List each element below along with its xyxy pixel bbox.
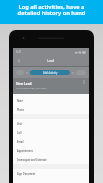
staticText: Add Activity [43,71,58,75]
staticText: Call [17,131,22,134]
button[interactable]: Call [13,128,89,137]
button[interactable]: Edit [82,80,86,84]
staticText: Investigate and Estimate [17,158,47,161]
button[interactable]: Back [15,57,23,65]
staticText: Sign Document [17,172,36,175]
staticText: Visit [17,122,23,125]
button[interactable]: Note [13,96,89,105]
staticText: 9:41 [16,50,22,54]
button[interactable]: Sign Document [13,169,89,178]
staticText: Appointment [17,149,33,152]
staticText: Note [17,99,23,102]
staticText: Log all activities, have a detailed hist… [0,3,103,17]
staticText: 1234 Sample Street, City 78902 [16,87,47,90]
button[interactable]: Appointment [13,146,89,155]
staticText: Lead [47,59,55,63]
button[interactable]: New Lead [13,78,89,94]
staticText: New Lead [16,82,32,86]
button[interactable]: Visit [13,119,89,128]
staticText: Photo [17,108,25,111]
button[interactable]: Investigate and Estimate [13,155,89,164]
button[interactable]: Email [13,137,89,146]
button[interactable]: Photo [13,105,89,114]
button[interactable]: Add Activity [30,70,70,75]
staticText: Email [17,140,24,143]
button[interactable]: Filter [16,70,24,75]
